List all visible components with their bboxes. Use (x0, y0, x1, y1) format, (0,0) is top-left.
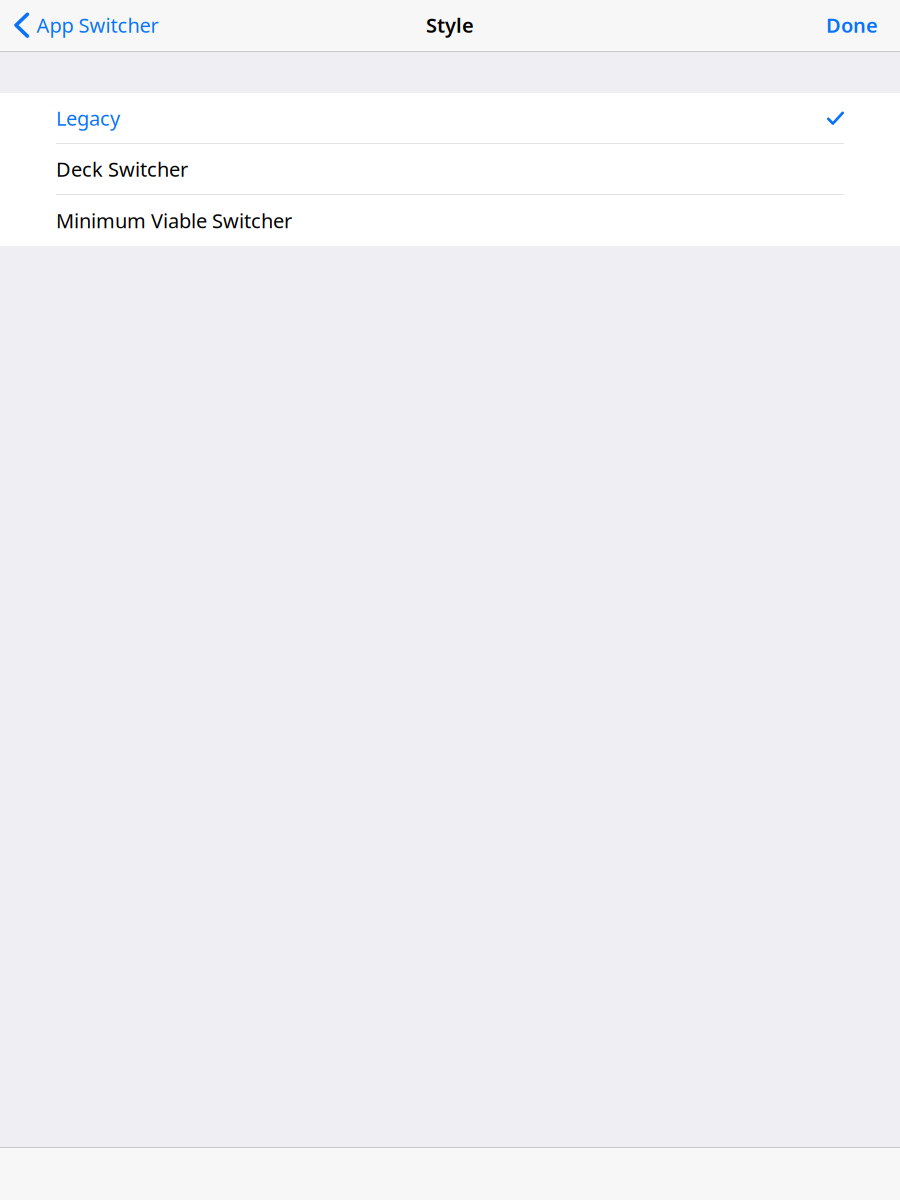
staticText: App Switcher (36, 12, 158, 38)
staticText: Minimum Viable Switcher (56, 207, 292, 234)
staticText: Legacy (56, 105, 120, 131)
button[interactable]: Minimum Viable Switcher (0, 195, 900, 246)
staticText: Deck Switcher (56, 156, 188, 182)
button[interactable]: Legacy (0, 93, 900, 144)
staticText: Done (826, 12, 878, 38)
staticText: Style (426, 12, 474, 38)
button[interactable]: App Switcher (0, 0, 170, 50)
button[interactable]: Deck Switcher (0, 144, 900, 195)
button[interactable]: Done (814, 0, 900, 50)
